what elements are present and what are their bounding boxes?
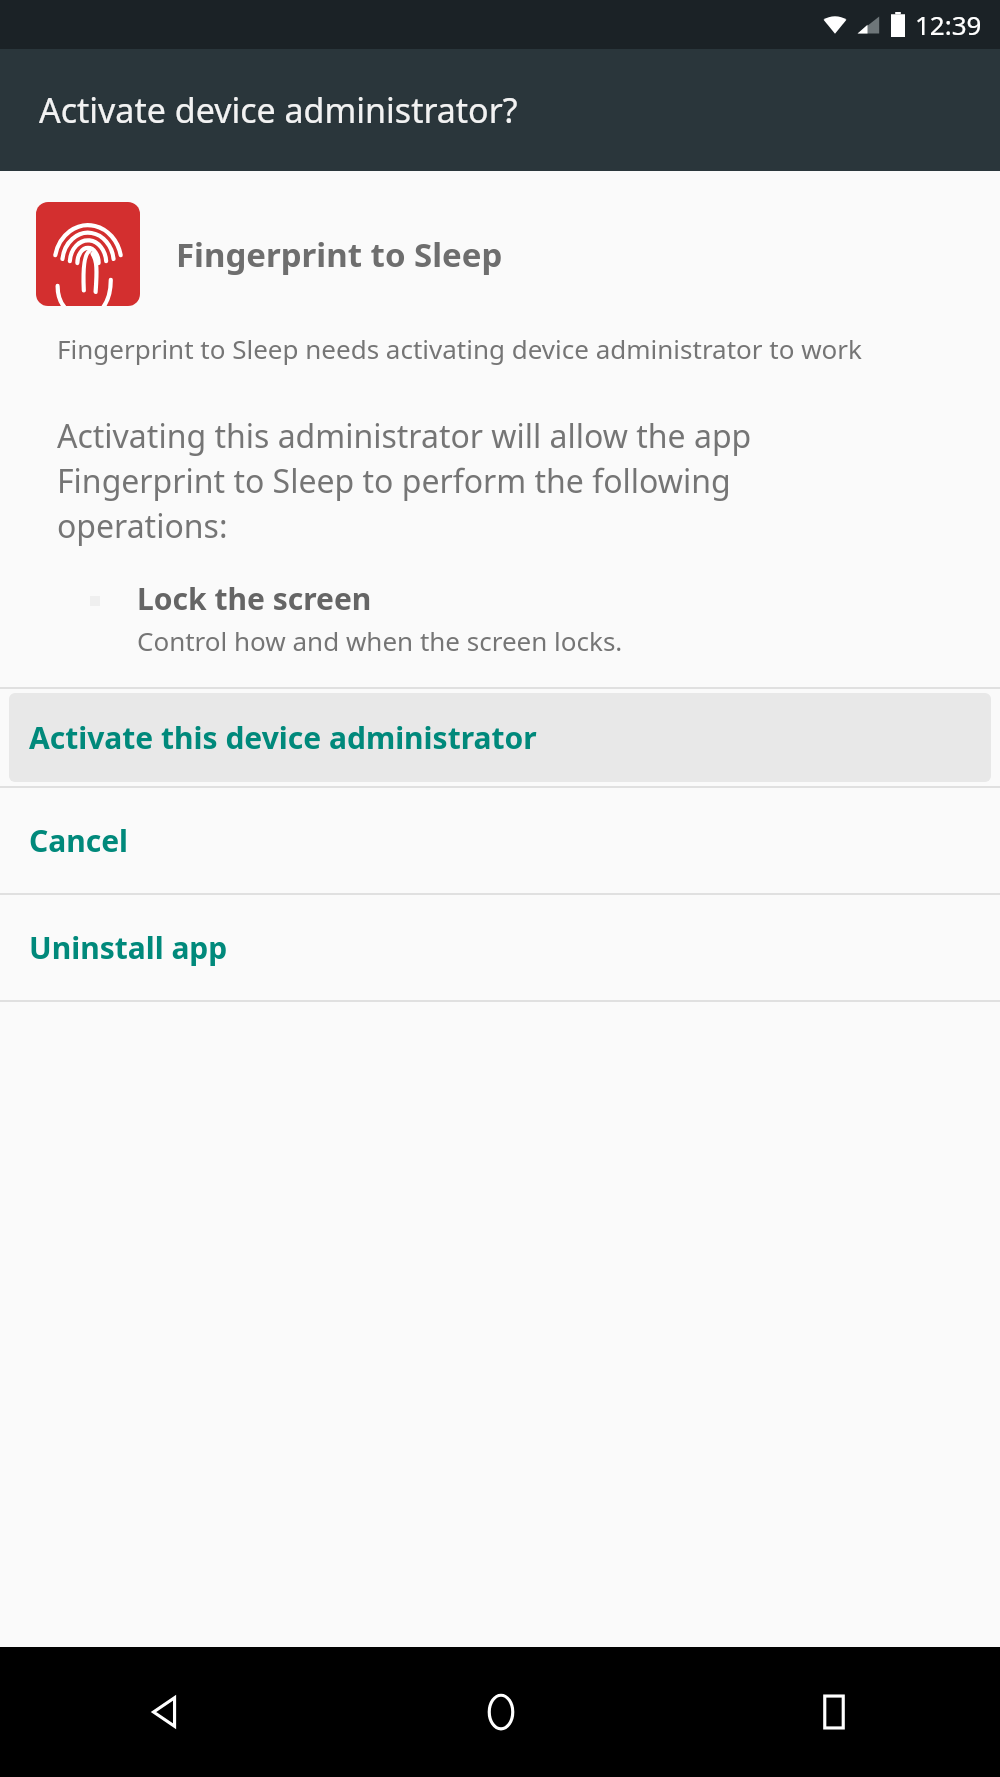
button[interactable]: Recent apps — [667, 1647, 1000, 1777]
staticText: Fingerprint to Sleep — [176, 232, 503, 277]
staticText: Uninstall app — [29, 927, 228, 968]
staticText: Activating this administrator will allow… — [57, 414, 880, 548]
staticText: Lock the screen — [137, 578, 372, 619]
staticText: Control how and when the screen locks. — [137, 623, 623, 658]
button[interactable]: Home — [334, 1647, 667, 1777]
button[interactable]: Uninstall app — [0, 895, 1000, 1000]
staticText: Fingerprint to Sleep needs activating de… — [57, 331, 940, 366]
button[interactable]: Back — [0, 1647, 334, 1777]
button[interactable]: Activate this device administrator — [0, 689, 1000, 786]
staticText: Activate device administrator? — [39, 87, 518, 133]
staticText: Activate this device administrator — [29, 717, 537, 758]
staticText: 12:39 — [915, 7, 982, 42]
staticText: Cancel — [29, 820, 129, 861]
button[interactable]: Cancel — [0, 788, 1000, 893]
